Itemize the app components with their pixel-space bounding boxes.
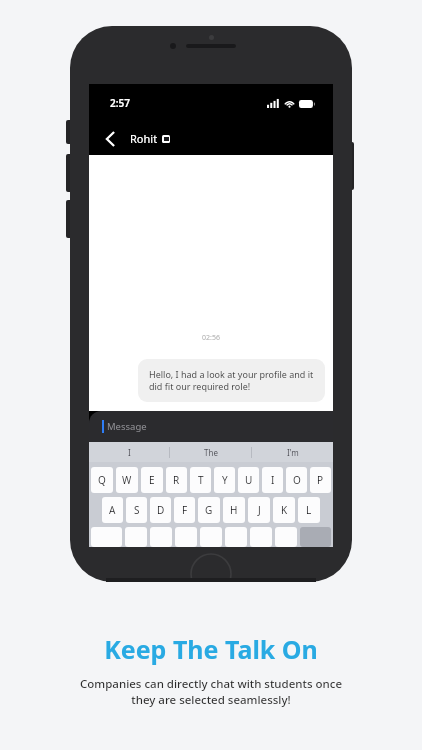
- button[interactable]: Shift: [91, 527, 122, 547]
- button[interactable]: L: [298, 497, 320, 523]
- staticText: O: [293, 473, 301, 487]
- button[interactable]: [275, 527, 297, 547]
- button[interactable]: A: [102, 497, 123, 523]
- button[interactable]: I'm: [252, 442, 333, 462]
- button[interactable]: [150, 527, 172, 547]
- staticText: I'm: [287, 447, 299, 458]
- staticText: Rohit: [130, 131, 158, 146]
- button[interactable]: W: [116, 467, 138, 493]
- button[interactable]: K: [273, 497, 295, 523]
- staticText: E: [149, 473, 155, 487]
- staticText: I: [271, 473, 275, 487]
- button[interactable]: [175, 527, 197, 547]
- button[interactable]: Q: [91, 467, 113, 493]
- staticText: F: [182, 503, 188, 517]
- staticText: L: [306, 503, 312, 517]
- button[interactable]: O: [286, 467, 307, 493]
- staticText: K: [281, 503, 288, 517]
- staticText: 02:56: [89, 333, 333, 343]
- staticText: R: [173, 473, 180, 487]
- staticText: 2:57: [110, 96, 130, 110]
- button[interactable]: F: [174, 497, 195, 523]
- staticText: Companies can directly chat with student…: [16, 676, 406, 707]
- button[interactable]: J: [248, 497, 270, 523]
- button[interactable]: I: [89, 442, 169, 462]
- button[interactable]: U: [238, 467, 259, 493]
- staticText: A: [109, 503, 116, 517]
- staticText: W: [122, 473, 132, 487]
- button[interactable]: P: [310, 467, 331, 493]
- staticText: P: [317, 473, 324, 487]
- button[interactable]: [125, 527, 147, 547]
- staticText: The: [204, 447, 218, 458]
- button[interactable]: [200, 527, 222, 547]
- staticText: T: [198, 473, 204, 487]
- button[interactable]: Hello, I had a look at your profile and …: [138, 359, 325, 402]
- button[interactable]: E: [141, 467, 163, 493]
- staticText: Q: [98, 473, 106, 487]
- staticText: Message: [107, 420, 147, 433]
- button[interactable]: S: [126, 497, 147, 523]
- staticText: I: [128, 447, 131, 458]
- staticText: S: [134, 503, 140, 517]
- staticText: H: [230, 503, 238, 517]
- button[interactable]: H: [223, 497, 245, 523]
- button[interactable]: G: [198, 497, 220, 523]
- button[interactable]: D: [150, 497, 171, 523]
- button[interactable]: Y: [214, 467, 235, 493]
- button[interactable]: Message: [89, 411, 333, 442]
- staticText: Keep The Talk On: [16, 632, 406, 666]
- staticText: J: [258, 503, 261, 517]
- button[interactable]: Rohit: [130, 131, 170, 146]
- button[interactable]: R: [166, 467, 187, 493]
- staticText: U: [245, 473, 253, 487]
- button[interactable]: Back: [97, 126, 123, 152]
- button[interactable]: [225, 527, 247, 547]
- staticText: Hello, I had a look at your profile and …: [149, 368, 314, 393]
- button[interactable]: The: [170, 442, 251, 462]
- button[interactable]: I: [262, 467, 283, 493]
- button[interactable]: [250, 527, 272, 547]
- button[interactable]: T: [190, 467, 211, 493]
- staticText: G: [205, 503, 213, 517]
- staticText: D: [157, 503, 165, 517]
- staticText: Y: [222, 473, 228, 487]
